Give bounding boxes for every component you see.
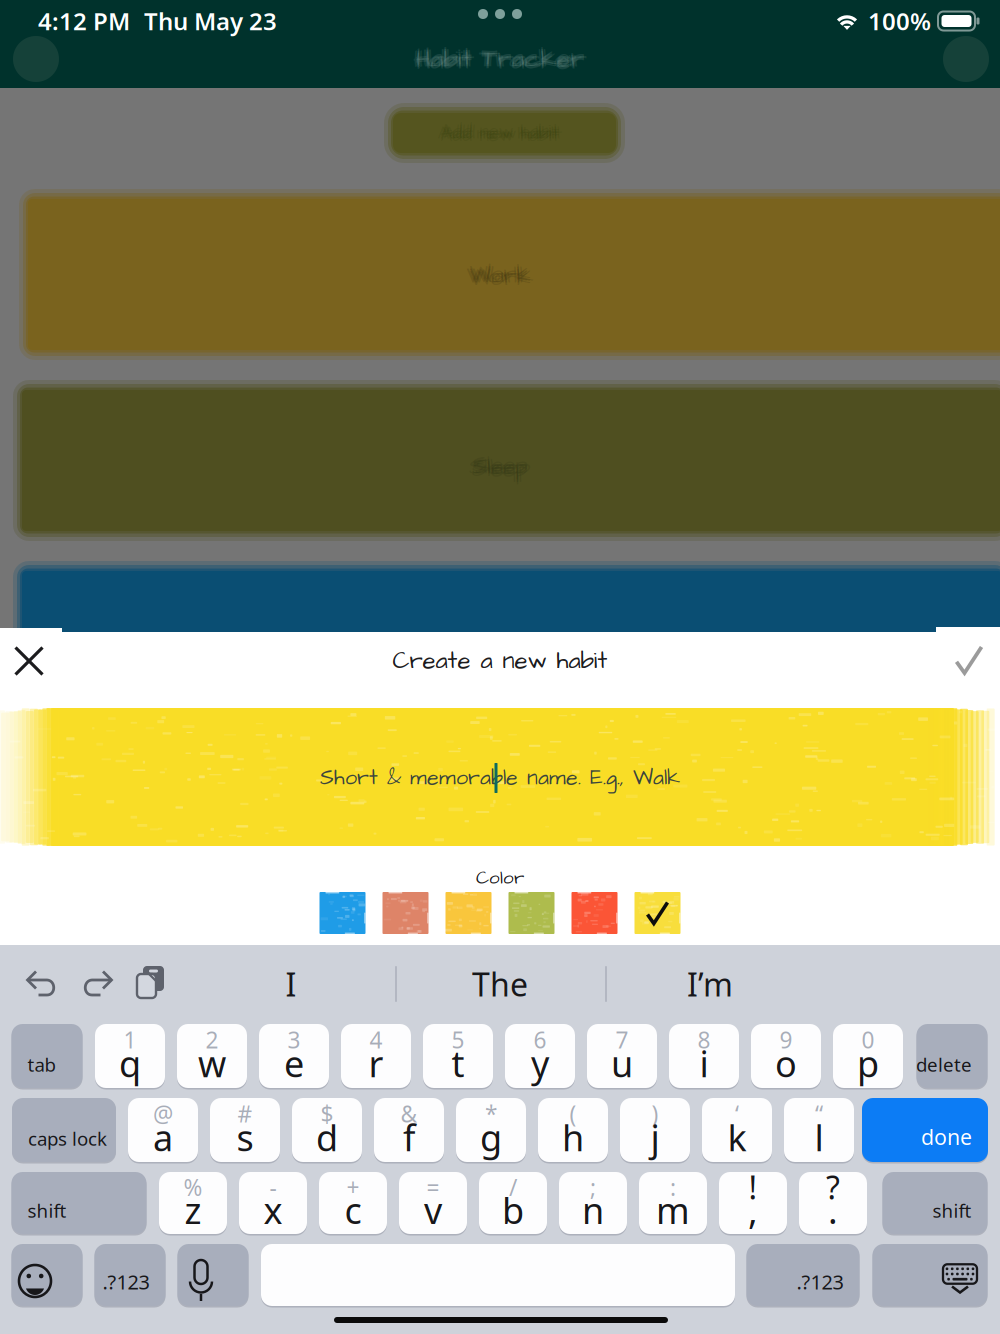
- button[interactable]: n: [559, 1172, 627, 1234]
- button[interactable]: w: [177, 1024, 247, 1088]
- button[interactable]: e: [259, 1024, 329, 1088]
- staticText: u: [611, 1039, 633, 1087]
- staticText: =: [426, 1172, 439, 1202]
- staticText: +: [346, 1172, 359, 1202]
- staticText: ): [651, 1099, 658, 1129]
- button[interactable]: Shift: [11, 1172, 146, 1234]
- button[interactable]: ,: [719, 1172, 787, 1234]
- button[interactable]: h: [538, 1098, 608, 1162]
- button[interactable]: Save habit: [936, 627, 1000, 693]
- button[interactable]: Colour option: [382, 892, 428, 934]
- button[interactable]: Colour option: [571, 892, 617, 934]
- button[interactable]: Shift: [882, 1172, 987, 1234]
- staticText: Add new habit: [440, 117, 559, 143]
- staticText: The: [472, 963, 528, 1005]
- button[interactable]: Colour option: [445, 892, 491, 934]
- staticText: e: [284, 1039, 304, 1087]
- staticText: 4:12 PM: [38, 5, 130, 37]
- button[interactable]: Close: [0, 628, 62, 694]
- staticText: y: [531, 1039, 549, 1087]
- staticText: Habit Tracker: [413, 41, 582, 77]
- staticText: Work: [466, 260, 527, 292]
- button[interactable]: q: [95, 1024, 165, 1088]
- staticText: Add new habit: [437, 120, 556, 146]
- staticText: Habit Tracker: [415, 41, 584, 77]
- button[interactable]: o: [751, 1024, 821, 1088]
- button[interactable]: .: [799, 1172, 867, 1234]
- button[interactable]: p: [833, 1024, 903, 1088]
- button[interactable]: g: [456, 1098, 526, 1162]
- button[interactable]: i: [669, 1024, 739, 1088]
- button[interactable]: Emoji: [11, 1244, 82, 1306]
- button[interactable]: c: [319, 1172, 387, 1234]
- button[interactable]: v: [399, 1172, 467, 1234]
- staticText: 7: [615, 1025, 628, 1055]
- button[interactable]: r: [341, 1024, 411, 1088]
- staticText: (: [569, 1099, 576, 1129]
- button[interactable]: Paste: [120, 958, 184, 1010]
- staticText: x: [263, 1186, 282, 1234]
- staticText: o: [775, 1039, 797, 1087]
- button[interactable]: Colour option: [319, 892, 365, 934]
- button[interactable]: Habit name: [0, 708, 1000, 846]
- staticText: j: [650, 1113, 659, 1161]
- staticText: shift: [27, 1198, 66, 1223]
- staticText: 8: [697, 1025, 710, 1055]
- staticText: Work: [469, 263, 530, 294]
- button[interactable]: Done: [862, 1098, 988, 1162]
- staticText: Add new habit: [440, 120, 559, 146]
- staticText: Sleep: [472, 451, 528, 483]
- button[interactable]: space: [261, 1244, 735, 1306]
- staticText: $: [320, 1099, 333, 1129]
- staticText: “: [815, 1099, 823, 1129]
- staticText: r: [368, 1039, 383, 1087]
- button[interactable]: j: [620, 1098, 690, 1162]
- button[interactable]: t: [423, 1024, 493, 1088]
- staticText: delete: [916, 1052, 972, 1077]
- button[interactable]: s: [210, 1098, 280, 1162]
- staticText: 100%: [868, 5, 931, 37]
- button[interactable]: Caps Lock: [12, 1098, 116, 1162]
- staticText: k: [727, 1113, 746, 1161]
- button[interactable]: y: [505, 1024, 575, 1088]
- button[interactable]: Colour option: [634, 892, 680, 934]
- staticText: -: [269, 1172, 276, 1202]
- button[interactable]: Numbers: [746, 1244, 859, 1306]
- button[interactable]: I’m: [607, 954, 812, 1014]
- staticText: 3: [287, 1025, 300, 1055]
- staticText: a: [153, 1113, 173, 1161]
- button[interactable]: Colour option: [508, 892, 554, 934]
- button[interactable]: Numbers: [94, 1244, 165, 1306]
- button[interactable]: b: [479, 1172, 547, 1234]
- button[interactable]: d: [292, 1098, 362, 1162]
- button[interactable]: Dictate: [177, 1244, 248, 1306]
- staticText: Habit Tracker: [415, 39, 584, 75]
- staticText: s: [236, 1113, 253, 1161]
- button[interactable]: Redo: [66, 958, 130, 1010]
- button[interactable]: Delete: [916, 1024, 987, 1088]
- button[interactable]: x: [239, 1172, 307, 1234]
- button[interactable]: Tab: [11, 1024, 82, 1088]
- button[interactable]: I: [188, 954, 393, 1014]
- staticText: Sleep: [472, 449, 528, 480]
- button[interactable]: z: [159, 1172, 227, 1234]
- staticText: Add new habit: [443, 120, 562, 146]
- staticText: 6: [533, 1025, 546, 1055]
- button[interactable]: Undo: [11, 958, 75, 1010]
- staticText: Work: [469, 260, 530, 292]
- button[interactable]: k: [702, 1098, 772, 1162]
- staticText: 0: [861, 1025, 874, 1055]
- staticText: n: [582, 1186, 604, 1234]
- button[interactable]: The: [397, 954, 602, 1014]
- staticText: m: [656, 1186, 690, 1234]
- button[interactable]: a: [128, 1098, 198, 1162]
- staticText: shift: [932, 1198, 971, 1223]
- button[interactable]: l: [784, 1098, 854, 1162]
- staticText: ‘: [735, 1099, 739, 1129]
- staticText: Sleep: [475, 451, 531, 483]
- staticText: ;: [590, 1172, 596, 1202]
- button[interactable]: Hide keyboard: [872, 1244, 987, 1306]
- button[interactable]: f: [374, 1098, 444, 1162]
- button[interactable]: m: [639, 1172, 707, 1234]
- button[interactable]: u: [587, 1024, 657, 1088]
